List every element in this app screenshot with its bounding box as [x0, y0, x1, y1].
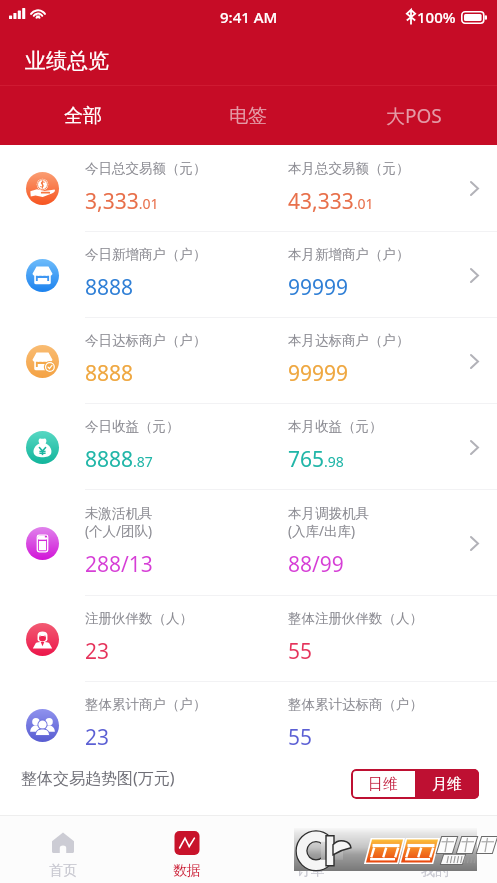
button[interactable]: 月维: [415, 769, 479, 799]
staticText: 55: [288, 723, 313, 752]
other: 查看详情: [470, 268, 479, 283]
staticText: (入库/出库): [288, 522, 356, 540]
staticText: 今日收益（元）: [85, 418, 180, 435]
staticText: 99999: [288, 359, 349, 388]
staticText: 本月新增商户（户）: [288, 246, 410, 263]
staticText: 43,333.01: [288, 187, 374, 216]
staticText: 288/13: [85, 550, 153, 579]
staticText: 23: [85, 637, 110, 666]
button[interactable]: 数据: [125, 815, 249, 883]
staticText: 首页: [49, 862, 77, 880]
button[interactable]: 首页: [0, 815, 125, 883]
button[interactable]: 今日新增商户（户）: [0, 232, 497, 318]
staticText: 全部: [64, 104, 102, 128]
button[interactable]: 全部: [0, 86, 165, 145]
staticText: 本月调拨机具: [288, 505, 369, 522]
staticText: 未激活机具: [85, 505, 153, 522]
staticText: 月维: [432, 775, 462, 794]
staticText: 数据: [173, 862, 201, 880]
staticText: 业绩总览: [25, 48, 109, 74]
staticText: 整体累计达标商（户）: [288, 696, 423, 713]
button[interactable]: 整体累计商户（户）: [0, 682, 497, 768]
button[interactable]: 大POS: [331, 86, 497, 145]
button[interactable]: 今日总交易额（元）: [0, 145, 497, 232]
staticText: 8888: [85, 273, 134, 302]
staticText: 大POS: [386, 103, 442, 129]
staticText: 3,333.01: [85, 187, 159, 216]
staticText: 订单: [297, 862, 325, 880]
staticText: 9:41 AM: [220, 7, 278, 27]
staticText: 今日新增商户（户）: [85, 246, 207, 263]
staticText: 整体交易趋势图(万元): [21, 767, 175, 789]
staticText: 88/99: [288, 550, 344, 579]
staticText: 55: [288, 637, 313, 666]
staticText: 100%: [417, 7, 456, 27]
button[interactable]: 电签: [165, 86, 331, 145]
staticText: 8888.87: [85, 445, 153, 474]
staticText: 8888: [85, 359, 134, 388]
staticText: 今日达标商户（户）: [85, 332, 207, 349]
staticText: 本月收益（元）: [288, 418, 383, 435]
staticText: 本月总交易额（元）: [288, 160, 410, 177]
button[interactable]: 今日达标商户（户）: [0, 318, 497, 404]
button[interactable]: 日维: [351, 769, 415, 799]
button[interactable]: 我的: [373, 815, 497, 883]
other: 查看详情: [470, 536, 479, 551]
staticText: 我的: [421, 862, 449, 880]
button[interactable]: 未激活机具: [0, 490, 497, 596]
other: 查看详情: [470, 440, 479, 455]
staticText: 注册伙伴数（人）: [85, 610, 193, 627]
staticText: 整体累计商户（户）: [85, 696, 207, 713]
staticText: 整体注册伙伴数（人）: [288, 610, 423, 627]
button[interactable]: 订单: [249, 815, 373, 883]
other: 查看详情: [470, 181, 479, 196]
other: 查看详情: [470, 354, 479, 369]
staticText: 今日总交易额（元）: [85, 160, 207, 177]
staticText: 本月达标商户（户）: [288, 332, 410, 349]
staticText: 电签: [229, 104, 267, 128]
staticText: 日维: [368, 775, 398, 794]
staticText: 765.98: [288, 445, 344, 474]
staticText: 23: [85, 723, 110, 752]
button[interactable]: 注册伙伴数（人）: [0, 596, 497, 682]
staticText: (个人/团队): [85, 522, 153, 540]
staticText: 99999: [288, 273, 349, 302]
button[interactable]: 今日收益（元）: [0, 404, 497, 490]
